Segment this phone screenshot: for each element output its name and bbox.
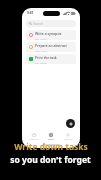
staticText: Search [33, 22, 44, 26]
staticText: Tasks [48, 138, 54, 141]
button[interactable]: Add task [66, 119, 75, 128]
staticText: Print the task [35, 55, 57, 60]
staticText: Oct, 12:00 [35, 37, 47, 40]
button[interactable]: Print the task [26, 54, 76, 64]
button[interactable]: Prepare an abstract [26, 42, 76, 52]
staticText: Oct, 09:00 [35, 61, 47, 64]
staticText: Settings [64, 138, 73, 141]
button[interactable]: Write a synopsis [26, 30, 76, 40]
staticText: Calendar [29, 138, 39, 141]
staticText: 9:41 [27, 11, 34, 15]
button[interactable]: Tasks [43, 131, 59, 142]
staticText: Nov, 17:30 [35, 49, 47, 52]
staticText: Write down tasks [14, 141, 88, 153]
button[interactable]: Search [26, 20, 76, 27]
button[interactable]: Settings [60, 131, 76, 142]
staticText: Prepare an abstract [35, 43, 67, 48]
staticText: Write a synopsis [35, 31, 62, 36]
button[interactable]: Calendar [26, 131, 42, 142]
staticText: so you don't forget [10, 154, 91, 166]
